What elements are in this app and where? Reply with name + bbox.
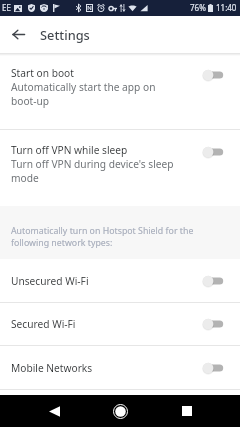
staticText: Automatically turn on Hotspot Shield for… [11,225,230,249]
staticText: Turn off VPN during device's sleep mode [11,157,178,185]
staticText: Unsecured Wi-Fi [11,274,89,288]
staticText: Settings [40,27,90,43]
button[interactable]: Recent apps [167,395,207,427]
button[interactable]: Turn off VPN while sleep [0,130,240,206]
staticText: Automatically start the app on boot-up [11,80,178,108]
staticText: 76% [190,4,206,13]
staticText: Turn off VPN while sleep [11,143,128,157]
button[interactable]: Secured Wi-Fi [0,303,240,345]
staticText: Mobile Networks [11,361,93,375]
button[interactable]: Navigate up [0,16,37,53]
button[interactable]: Home [100,395,140,427]
staticText: Start on boot [11,66,74,80]
staticText: EE [2,4,11,13]
staticText: Secured Wi-Fi [11,317,76,331]
button[interactable]: Unsecured Wi-Fi [0,259,240,302]
button[interactable]: Mobile Networks [0,346,240,389]
button[interactable]: Back [34,395,74,427]
button[interactable]: Start on boot [0,53,240,129]
staticText: 11:40 [216,4,237,13]
